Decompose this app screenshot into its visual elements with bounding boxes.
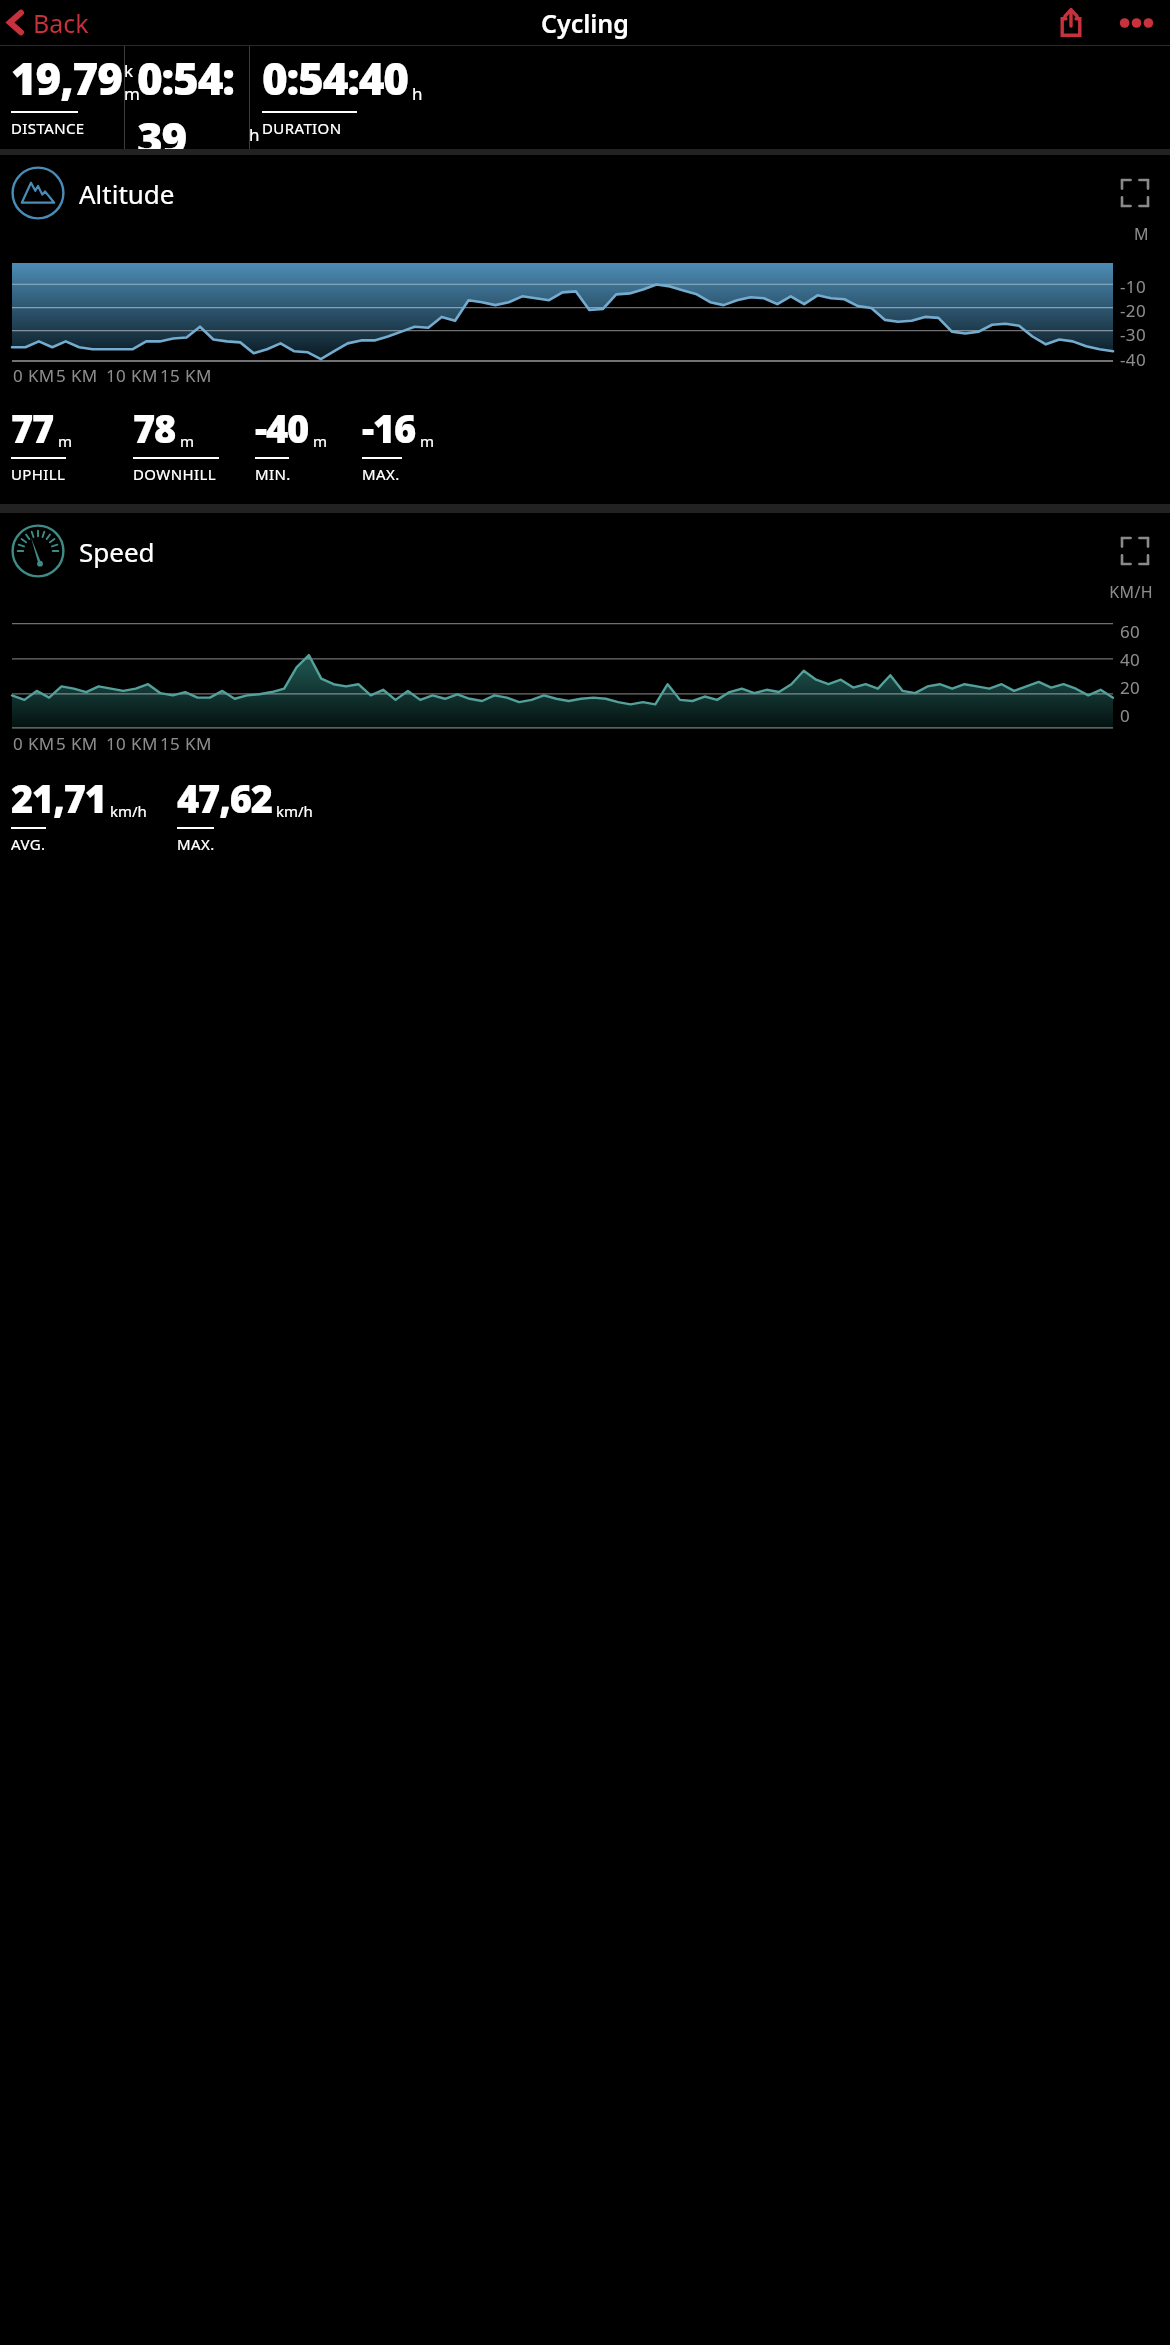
- staticText: 0 KM: [13, 364, 55, 387]
- staticText: 0: [1120, 704, 1131, 727]
- staticText: 0 KM: [13, 732, 55, 755]
- staticText: 77: [11, 402, 54, 454]
- staticText: m: [313, 431, 328, 451]
- staticText: 47,62: [177, 772, 272, 824]
- button[interactable]: Back: [0, 0, 99, 45]
- staticText: -30: [1120, 323, 1147, 346]
- staticText: 10 KM: [106, 732, 158, 755]
- staticText: 60: [1120, 620, 1141, 643]
- staticText: DISTANCE: [11, 118, 85, 138]
- staticText: Altitude: [79, 176, 175, 211]
- staticText: -16: [362, 402, 416, 454]
- staticText: Cycling: [541, 6, 629, 40]
- staticText: h: [412, 82, 423, 105]
- staticText: km/h: [276, 801, 313, 821]
- staticText: MIN.: [255, 464, 291, 484]
- staticText: -10: [1120, 275, 1147, 298]
- staticText: Speed: [79, 534, 155, 569]
- staticText: m: [58, 431, 73, 451]
- staticText: 19,79: [11, 48, 122, 108]
- button[interactable]: More options: [1113, 0, 1159, 45]
- staticText: M: [0, 223, 1149, 245]
- staticText: m: [180, 431, 195, 451]
- staticText: AVG.: [11, 834, 46, 854]
- staticText: DURATION: [262, 118, 342, 138]
- button[interactable]: Share: [1048, 0, 1094, 45]
- staticText: 78: [133, 402, 176, 454]
- button[interactable]: Expand Speed chart: [1112, 528, 1158, 574]
- staticText: 40: [1120, 648, 1141, 671]
- staticText: 20: [1120, 676, 1141, 699]
- staticText: 5 KM: [56, 364, 98, 387]
- staticText: 0:54:39: [137, 48, 249, 149]
- staticText: -40: [255, 402, 309, 454]
- staticText: UPHILL: [11, 464, 66, 484]
- staticText: 5 KM: [56, 732, 98, 755]
- staticText: MAX.: [177, 834, 215, 854]
- staticText: -40: [1120, 348, 1147, 371]
- staticText: 15 KM: [160, 364, 212, 387]
- staticText: 0:54:40: [262, 48, 408, 108]
- staticText: KM/H: [0, 581, 1153, 603]
- staticText: MAX.: [362, 464, 400, 484]
- button[interactable]: Expand Altitude chart: [1112, 170, 1158, 216]
- staticText: 15 KM: [160, 732, 212, 755]
- staticText: Back: [33, 6, 89, 39]
- staticText: km/h: [110, 801, 147, 821]
- staticText: DOWNHILL: [133, 464, 216, 484]
- staticText: 10 KM: [106, 364, 158, 387]
- staticText: 21,71: [11, 772, 106, 824]
- staticText: m: [420, 431, 435, 451]
- staticText: -20: [1120, 299, 1147, 322]
